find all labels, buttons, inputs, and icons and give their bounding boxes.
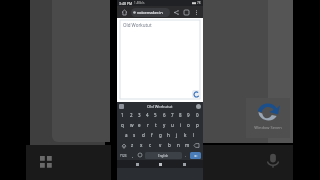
button[interactable]: f [148, 131, 155, 139]
staticText: x [140, 142, 143, 148]
staticText: ?123 [120, 154, 127, 158]
button[interactable]: e [136, 121, 143, 129]
button[interactable]: Refresh [192, 90, 200, 98]
button[interactable]: Old Workutut [120, 20, 200, 99]
staticText: i [180, 122, 182, 128]
staticText: t [155, 122, 157, 128]
staticText: v [159, 142, 162, 148]
staticText: o [187, 122, 190, 128]
button[interactable]: Old Workutut [147, 104, 173, 109]
staticText: y [163, 122, 166, 128]
button[interactable]: d [140, 131, 147, 139]
button[interactable]: u [169, 121, 176, 129]
staticText: 1 [121, 112, 124, 118]
button[interactable]: More options [192, 8, 200, 16]
button[interactable]: 4 [144, 111, 151, 119]
staticText: 7 [171, 112, 174, 118]
button[interactable]: English [145, 152, 182, 159]
button[interactable]: 6 [161, 111, 168, 119]
button[interactable]: voicemaker.in [131, 8, 170, 17]
staticText: g [159, 132, 162, 138]
staticText: 8 [179, 112, 182, 118]
staticText: k [184, 132, 187, 138]
button[interactable]: 1 [119, 111, 126, 119]
button[interactable]: Backspace [193, 142, 200, 149]
button[interactable]: Home [156, 160, 164, 168]
button[interactable]: Microphone [258, 146, 288, 176]
staticText: s [133, 132, 136, 138]
button[interactable]: c [147, 141, 154, 149]
button[interactable]: t [152, 121, 159, 129]
button[interactable]: n [175, 141, 182, 149]
button[interactable]: r [144, 121, 151, 129]
staticText: 6 [163, 112, 166, 118]
staticText: Window Seven [254, 125, 282, 130]
button[interactable]: Tabs [182, 8, 191, 17]
button[interactable]: 5 [152, 111, 159, 119]
button[interactable]: 2 [128, 111, 135, 119]
button[interactable]: Apps [36, 152, 56, 172]
button[interactable]: i [177, 121, 184, 129]
button[interactable]: Emoji [137, 152, 143, 158]
staticText: m [185, 142, 190, 148]
staticText: q [121, 122, 124, 128]
button[interactable]: h [165, 131, 172, 139]
staticText: 9 [187, 112, 190, 118]
button[interactable]: Share [172, 8, 181, 17]
button[interactable]: Recents [180, 160, 188, 168]
button[interactable]: v [157, 141, 164, 149]
staticText: 5 [154, 112, 157, 118]
staticText: w [130, 122, 134, 128]
button[interactable]: Enter [190, 152, 201, 159]
staticText: 3 [138, 112, 141, 118]
button[interactable]: m [184, 141, 191, 149]
button[interactable]: y [161, 121, 168, 129]
button[interactable]: z [129, 141, 136, 149]
button[interactable]: b [166, 141, 173, 149]
button[interactable]: k [182, 131, 189, 139]
staticText: 78 [197, 1, 201, 5]
staticText: . [185, 153, 187, 157]
button[interactable]: Shift [120, 142, 127, 149]
button[interactable]: g [157, 131, 164, 139]
staticText: n [177, 142, 180, 148]
staticText: voicemaker.in [137, 10, 163, 15]
button[interactable]: ?123 [119, 152, 128, 159]
staticText: z [131, 142, 134, 148]
button[interactable]: q [119, 121, 126, 129]
button[interactable]: Clipboard [119, 104, 124, 109]
button[interactable]: x [138, 141, 145, 149]
button[interactable]: Home [120, 8, 129, 17]
staticText: j [176, 132, 178, 138]
button[interactable]: o [185, 121, 192, 129]
staticText: Old Workutut [123, 22, 152, 28]
staticText: 0 [196, 112, 199, 118]
button[interactable]: a [123, 131, 130, 139]
staticText: l [193, 132, 195, 138]
staticText: 4 [146, 112, 149, 118]
staticText: c [149, 142, 152, 148]
staticText: b [168, 142, 171, 148]
button[interactable]: 9 [185, 111, 192, 119]
button[interactable]: Period [184, 153, 188, 157]
button[interactable]: j [173, 131, 180, 139]
button[interactable]: p [194, 121, 201, 129]
staticText: a [125, 132, 128, 138]
button[interactable]: Window Seven logo [246, 98, 290, 138]
button[interactable]: 0 [194, 111, 201, 119]
button[interactable]: 8 [177, 111, 184, 119]
button[interactable]: Back [133, 160, 141, 168]
button[interactable]: 3 [136, 111, 143, 119]
staticText: , [132, 153, 134, 158]
staticText: 1.4Kb/s [134, 1, 145, 5]
button[interactable]: l [190, 131, 197, 139]
button[interactable]: w [128, 121, 135, 129]
staticText: p [196, 122, 199, 128]
button[interactable]: s [131, 131, 138, 139]
staticText: d [142, 132, 145, 138]
staticText: e [138, 122, 141, 128]
button[interactable]: Comma [130, 153, 135, 158]
button[interactable]: Voice input [196, 104, 201, 109]
staticText: r [147, 122, 149, 128]
button[interactable]: 7 [169, 111, 176, 119]
